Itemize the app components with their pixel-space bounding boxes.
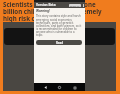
button[interactable]: Recent apps: [71, 84, 78, 91]
button[interactable]: Home: [56, 84, 63, 91]
staticText: Scientists warn that up to one billion c…: [3, 0, 116, 22]
staticText: SIGN IN: [70, 4, 80, 7]
button[interactable]: SIGN IN: [70, 4, 80, 7]
staticText: Read: [56, 41, 63, 45]
staticText: Warning!: [36, 9, 50, 13]
staticText: Version Beta: [36, 3, 56, 7]
button[interactable]: More options: [82, 3, 84, 7]
button[interactable]: Read: [36, 40, 82, 45]
staticText: This story contains style and harsh emer…: [36, 14, 82, 36]
button[interactable]: Back: [42, 84, 49, 91]
